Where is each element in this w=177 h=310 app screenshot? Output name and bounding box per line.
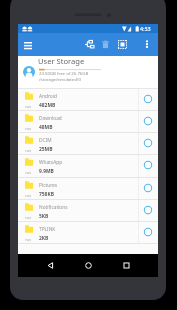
button[interactable]: Recent apps [117, 256, 135, 274]
staticText: 2KB [39, 235, 49, 242]
button[interactable]: Move to [81, 36, 97, 52]
button[interactable]: rwx [18, 199, 158, 221]
button[interactable]: Select WhatsApp [138, 154, 158, 176]
staticText: DCIM [39, 137, 134, 144]
staticText: Download [39, 115, 134, 122]
staticText: WhatsApp [39, 159, 134, 166]
button[interactable]: User Storage [18, 56, 158, 88]
button[interactable]: rwx [18, 88, 158, 110]
button[interactable]: rwx [18, 154, 158, 176]
staticText: 4:53 [140, 25, 151, 32]
staticText: 758KB [39, 191, 54, 198]
staticText: Android [39, 93, 134, 100]
staticText: 9.9MB [39, 168, 54, 175]
staticText: rwx [25, 104, 32, 109]
staticText: /storage/emulated/0 [39, 76, 81, 82]
staticText: 5KB [39, 213, 49, 220]
button[interactable]: Select TPLINK [138, 221, 158, 243]
staticText: User Storage [38, 56, 85, 66]
staticText: Pictures [39, 182, 134, 189]
button[interactable]: More options [139, 36, 155, 52]
button[interactable]: rwx [18, 110, 158, 132]
staticText: rwx [25, 126, 32, 131]
staticText: Notifications [39, 204, 134, 211]
staticText: rwx [25, 148, 32, 153]
staticText: rwx [25, 170, 32, 175]
button[interactable]: Select DCIM [138, 132, 158, 154]
button[interactable]: Select Pictures [138, 177, 158, 199]
staticText: 23.50GB free of 26.76GB [39, 70, 89, 76]
button[interactable]: Select Notifications [138, 199, 158, 221]
button[interactable]: rwx [18, 177, 158, 199]
staticText: rwx [25, 215, 32, 220]
staticText: 482MB [39, 102, 56, 109]
button[interactable]: Select all [114, 36, 130, 52]
button[interactable]: Select Download [138, 110, 158, 132]
staticText: TPLINK [39, 226, 134, 233]
staticText: rwx [25, 237, 32, 242]
button[interactable]: Back [41, 256, 59, 274]
button[interactable]: Delete [97, 36, 113, 52]
staticText: 48MB [39, 124, 53, 131]
staticText: 25MB [39, 146, 53, 153]
button[interactable]: Home [79, 256, 97, 274]
button[interactable]: Navigation menu [20, 38, 36, 54]
staticText: rwx [25, 193, 32, 198]
button[interactable]: Select Android [138, 88, 158, 110]
button[interactable]: rwx [18, 132, 158, 154]
button[interactable]: rwx [18, 221, 158, 243]
